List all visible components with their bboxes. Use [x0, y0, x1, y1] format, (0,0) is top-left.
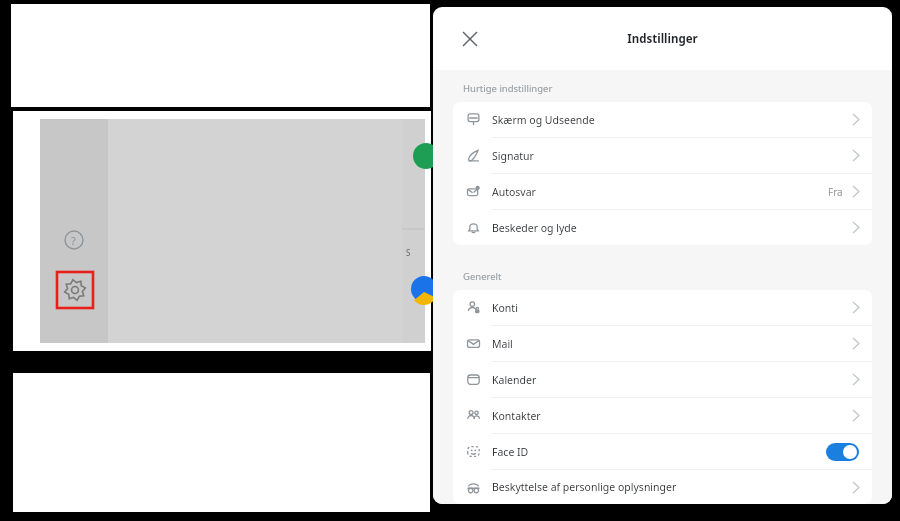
staticText: Skærm og Udseende — [492, 113, 595, 127]
button[interactable]: Skærm og Udseende — [453, 102, 872, 137]
button[interactable]: Close — [456, 25, 484, 53]
staticText: ? — [71, 233, 76, 248]
staticText: Generelt — [463, 270, 502, 283]
staticText: Konti — [492, 301, 518, 315]
staticText: Hurtige indstillinger — [463, 82, 553, 95]
button[interactable]: Beskeder og lyde — [453, 210, 872, 245]
staticText: Beskyttelse af personlige oplysninger — [492, 480, 677, 494]
staticText: Kalender — [492, 373, 537, 387]
button[interactable]: Settings — [57, 272, 93, 308]
button[interactable]: Signatur — [453, 138, 872, 173]
button[interactable]: Mail — [453, 326, 872, 361]
button[interactable]: Konti — [453, 290, 872, 325]
button[interactable]: Face ID — [453, 434, 872, 469]
staticText: Signatur — [492, 149, 534, 163]
staticText: Beskeder og lyde — [492, 221, 577, 235]
staticText: Mail — [492, 337, 513, 351]
button[interactable]: Beskyttelse af personlige oplysninger — [453, 470, 872, 504]
staticText: Fra — [828, 185, 843, 199]
button[interactable]: Kontakter — [453, 398, 872, 433]
staticText: Face ID — [492, 445, 529, 459]
button[interactable]: Autosvar — [453, 174, 872, 209]
staticText: Autosvar — [492, 185, 536, 199]
staticText: Kontakter — [492, 409, 541, 423]
staticText: Indstillinger — [627, 31, 698, 47]
staticText: S — [406, 247, 411, 258]
button[interactable]: Kalender — [453, 362, 872, 397]
